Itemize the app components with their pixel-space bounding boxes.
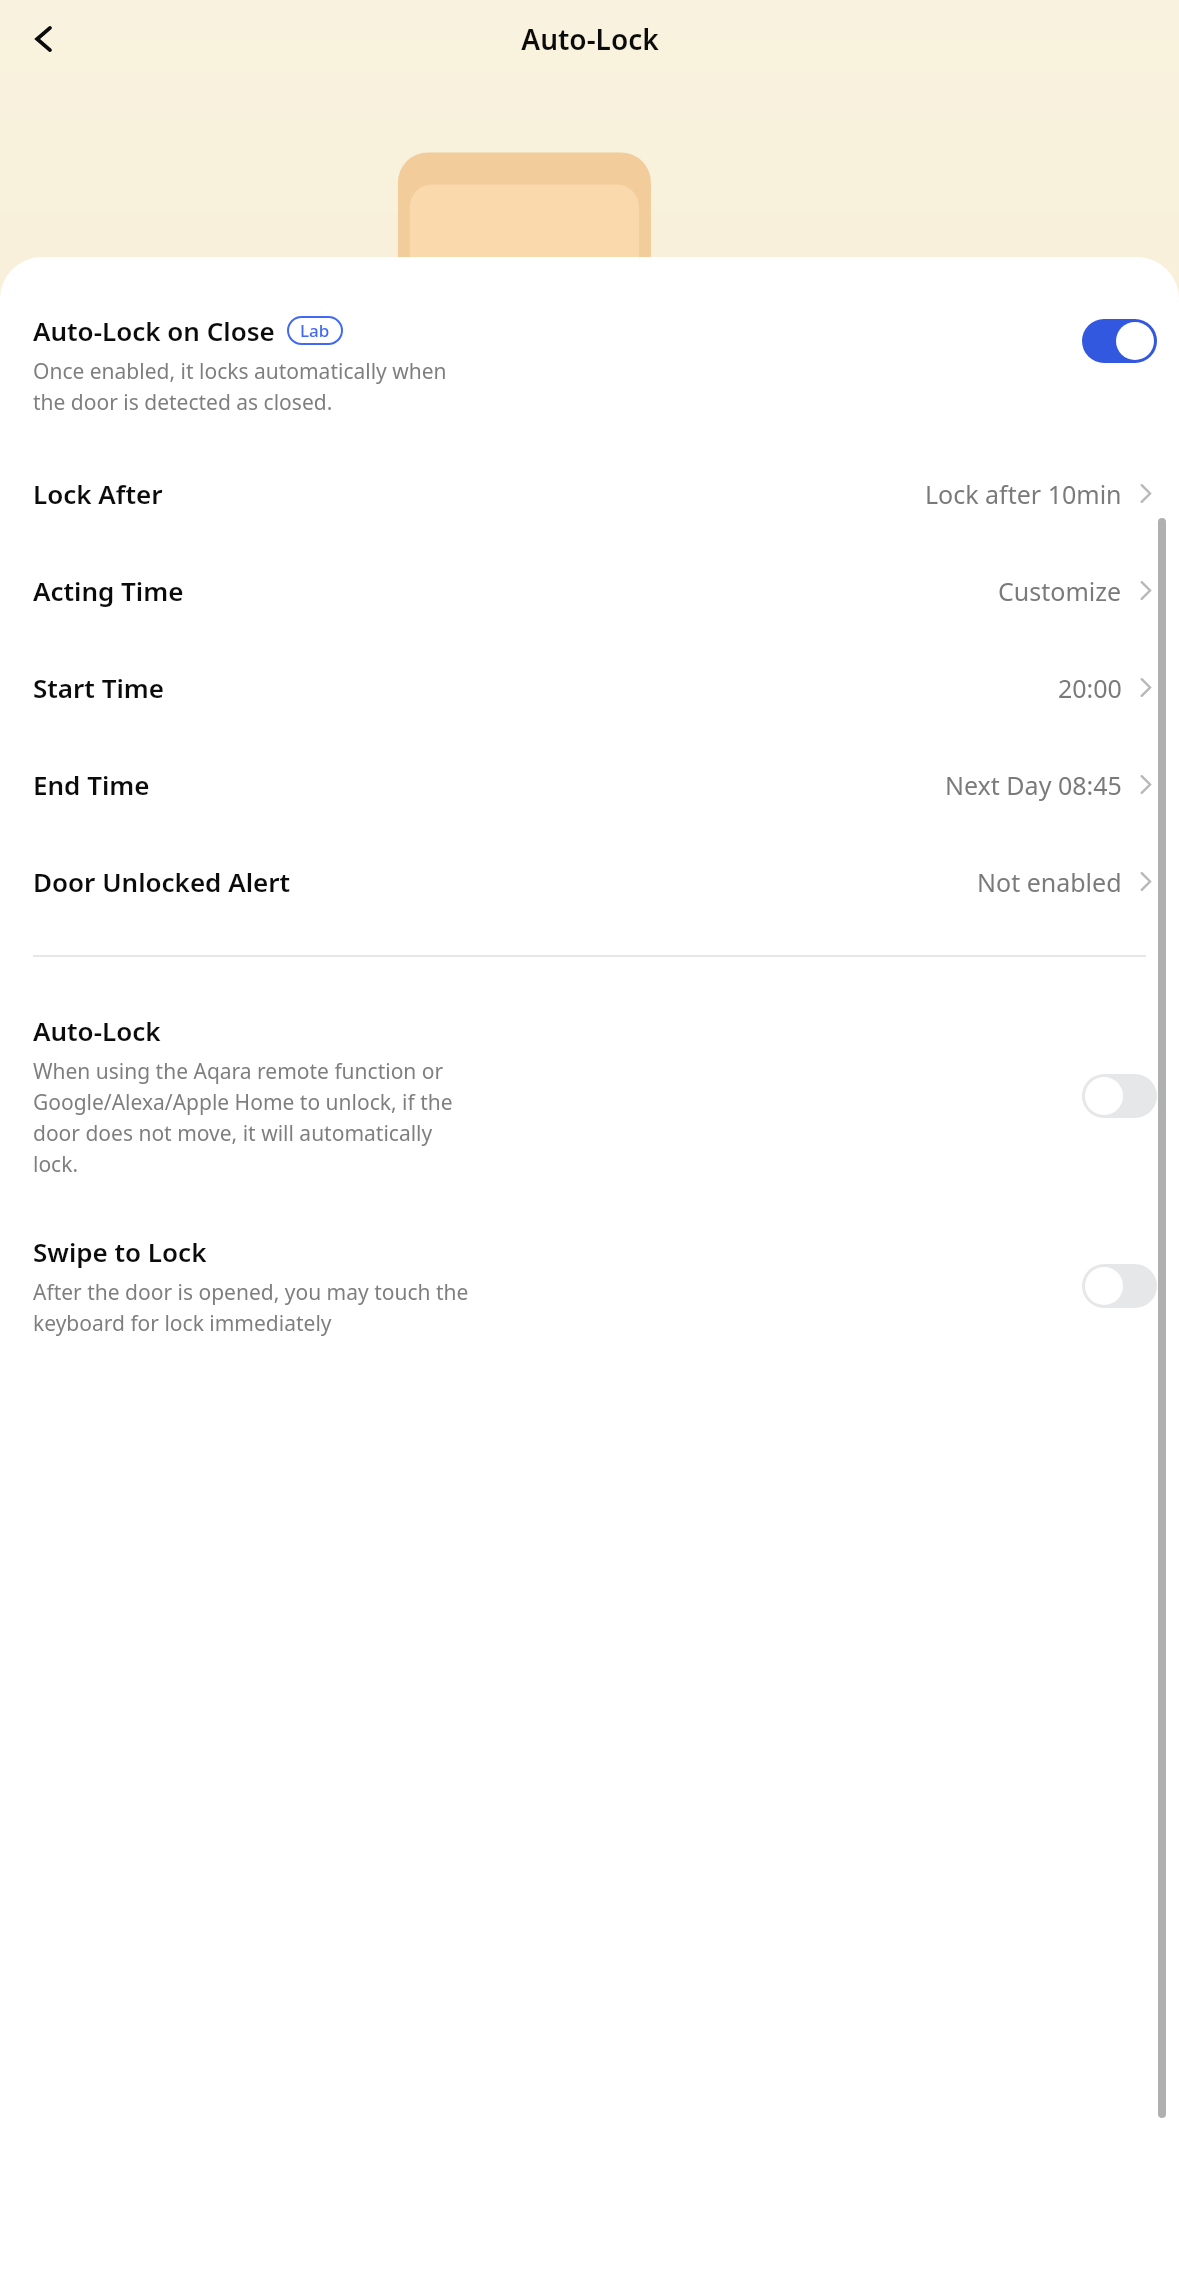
staticText: When using the Aqara remote function or … — [33, 1057, 453, 1178]
button[interactable]: Back — [12, 7, 76, 71]
staticText: Start Time — [33, 670, 164, 705]
button[interactable]: End Time — [0, 767, 1179, 802]
staticText: Lock After — [33, 476, 163, 511]
staticText: End Time — [33, 767, 150, 802]
staticText: Auto-Lock on Close — [33, 313, 275, 348]
staticText: Next Day 08:45 — [945, 768, 1122, 802]
staticText: Lab — [300, 319, 330, 342]
staticText: Door Unlocked Alert — [33, 864, 291, 899]
button[interactable]: Door Unlocked Alert — [0, 864, 1179, 899]
staticText: Auto-Lock — [521, 20, 659, 58]
staticText: Acting Time — [33, 573, 184, 608]
button[interactable]: Auto-Lock — [0, 1013, 1179, 1178]
button[interactable]: Auto-Lock on Close — [0, 313, 1179, 416]
button[interactable]: Start Time — [0, 670, 1179, 705]
staticText: Customize — [998, 574, 1122, 608]
staticText: Once enabled, it locks automatically whe… — [33, 357, 447, 416]
button[interactable]: Acting Time — [0, 573, 1179, 608]
button[interactable]: Toggle, off — [1082, 1074, 1157, 1118]
staticText: After the door is opened, you may touch … — [33, 1278, 469, 1337]
staticText: Not enabled — [977, 865, 1122, 899]
button[interactable]: Auto-Lock on Close, on — [1082, 319, 1157, 363]
staticText: 20:00 — [1058, 671, 1122, 705]
button[interactable]: Lock After — [0, 476, 1179, 511]
button[interactable]: Toggle, off — [1082, 1264, 1157, 1308]
staticText: Auto-Lock — [33, 1013, 161, 1048]
button[interactable]: Swipe to Lock — [0, 1234, 1179, 1337]
staticText: Swipe to Lock — [33, 1234, 207, 1269]
staticText: Lock after 10min — [925, 477, 1122, 511]
